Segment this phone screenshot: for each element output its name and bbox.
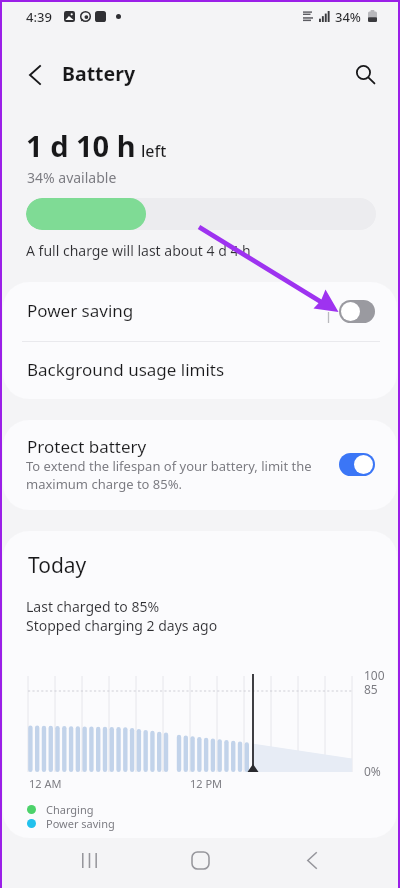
staticText: 12 AM xyxy=(29,776,62,791)
staticText: 0% xyxy=(364,763,381,779)
staticText: To extend the lifespan of your battery, … xyxy=(26,457,328,493)
button[interactable]: Home xyxy=(174,839,226,881)
staticText: Background usage limits xyxy=(27,358,225,381)
staticText: left xyxy=(141,140,167,162)
button[interactable]: Switch on xyxy=(339,453,375,476)
staticText: 34% xyxy=(335,8,361,26)
staticText: Protect battery xyxy=(27,435,147,458)
staticText: A full charge will last about 4 d 4 h xyxy=(26,241,251,260)
button[interactable]: Recent apps xyxy=(63,839,115,881)
staticText: 85 xyxy=(364,681,378,697)
staticText: 1 d 10 h xyxy=(26,126,136,165)
button[interactable]: Power saving xyxy=(3,282,397,341)
staticText: 100 xyxy=(364,667,385,683)
staticText: Power saving xyxy=(27,299,134,322)
button[interactable]: Switch off xyxy=(339,300,375,323)
staticText: 34% available xyxy=(27,168,117,187)
staticText: Last charged to 85% xyxy=(26,597,160,616)
staticText: Power saving xyxy=(46,816,115,831)
staticText: Battery xyxy=(62,60,136,87)
staticText: Today xyxy=(28,551,87,580)
button[interactable]: Background usage limits xyxy=(3,341,397,399)
staticText: Charging xyxy=(46,802,94,817)
button[interactable]: Search xyxy=(343,52,387,96)
button[interactable]: Back xyxy=(286,839,338,881)
staticText: Stopped charging 2 days ago xyxy=(26,616,218,635)
button[interactable]: Back xyxy=(13,53,57,97)
staticText: 4:39 xyxy=(26,8,52,26)
staticText: 12 PM xyxy=(190,776,223,791)
button[interactable]: Protect battery xyxy=(3,420,397,510)
